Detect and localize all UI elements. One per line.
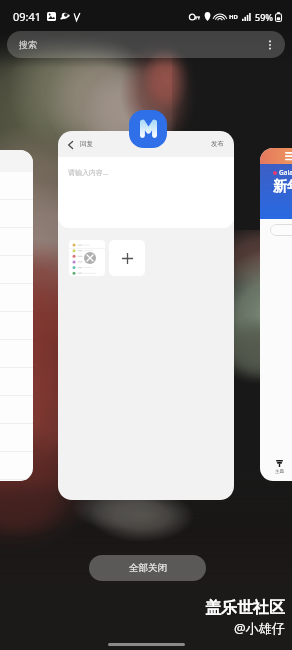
staticText: 搜索 <box>19 39 37 50</box>
button[interactable] <box>0 150 33 481</box>
button[interactable]: Remove attachment <box>84 252 96 264</box>
staticText: 主题 <box>275 469 284 475</box>
staticText: 新年 <box>273 178 292 196</box>
staticText: 全部关闭 <box>129 562 167 574</box>
staticText: HD <box>229 13 238 21</box>
staticText: Galaxy <box>279 168 292 177</box>
button[interactable]: Galaxy <box>260 148 292 481</box>
button[interactable]: 请输入内容... <box>58 157 234 228</box>
staticText: 回复 <box>80 140 93 148</box>
staticText: 请输入内容... <box>68 168 109 178</box>
staticText: 盖乐世社区 <box>205 598 285 618</box>
staticText: 09:41 <box>13 9 42 24</box>
staticText: 59% <box>255 11 273 23</box>
button[interactable]: Back <box>64 138 77 151</box>
staticText: @小雄仔 <box>234 619 285 637</box>
button[interactable]: More options <box>261 36 279 54</box>
button[interactable]: App icon <box>129 110 167 148</box>
button[interactable]: Add attachment <box>109 240 145 276</box>
button[interactable]: Back <box>58 131 234 500</box>
button[interactable]: 发布 <box>211 140 224 148</box>
button[interactable]: 全部关闭 <box>89 555 206 581</box>
button[interactable]: 搜索 <box>7 31 285 58</box>
staticText: 发布 <box>211 140 224 148</box>
